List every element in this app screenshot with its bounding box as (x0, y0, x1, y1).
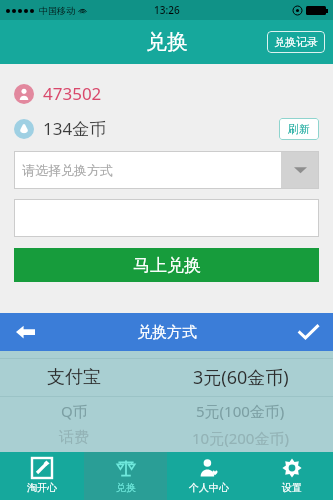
staticText: 兑换记录 (274, 35, 318, 49)
button[interactable]: Back (10, 317, 40, 347)
button[interactable]: 兑换记录 (267, 31, 325, 53)
staticText: 3元(60金币) (193, 365, 289, 390)
staticText: 支付宝 (47, 366, 101, 389)
staticText: 473502 (43, 82, 102, 105)
staticText: 设置 (282, 481, 302, 494)
staticText: 个人中心 (189, 481, 229, 494)
staticText: 淘开心 (27, 481, 57, 494)
button[interactable]: Q币 (0, 397, 333, 424)
button[interactable]: Confirm (293, 317, 323, 347)
staticText: 13:26 (154, 3, 180, 17)
button[interactable]: 支付宝 (0, 359, 333, 396)
staticText: 134金币 (43, 117, 107, 140)
staticText: 兑换方式 (137, 323, 197, 342)
button[interactable]: 刷新 (279, 118, 319, 140)
button[interactable]: 兑换 (84, 452, 167, 500)
button[interactable]: 设置 (250, 452, 333, 500)
button[interactable]: 请选择兑换方式 (14, 151, 319, 189)
staticText: 10元(200金币) (192, 428, 289, 448)
staticText: 兑换 (116, 481, 136, 494)
button[interactable] (14, 199, 319, 237)
staticText: 中国移动 (39, 5, 75, 16)
button[interactable]: 马上兑换 (14, 248, 319, 282)
staticText: 刷新 (288, 122, 310, 136)
staticText: 马上兑换 (133, 255, 201, 276)
button[interactable]: 个人中心 (167, 452, 250, 500)
staticText: Q币 (61, 401, 88, 421)
staticText: 兑换 (146, 29, 188, 55)
button[interactable]: 淘开心 (0, 452, 84, 500)
staticText: 5元(100金币) (196, 401, 285, 421)
button[interactable]: 话费 (0, 424, 333, 451)
staticText: 请选择兑换方式 (22, 162, 113, 178)
staticText: 话费 (59, 428, 89, 447)
